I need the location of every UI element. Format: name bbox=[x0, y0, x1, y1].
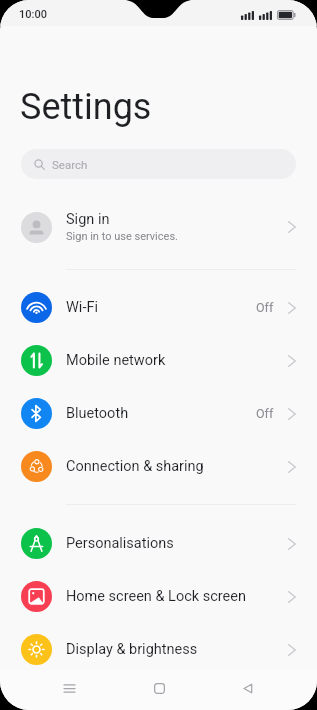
staticText: Wi-Fi bbox=[66, 299, 98, 316]
other: Open bbox=[288, 355, 296, 367]
other: Open bbox=[288, 408, 296, 420]
other: Open bbox=[288, 644, 296, 656]
other: Open bbox=[288, 221, 296, 233]
staticText: Sign in to use services. bbox=[66, 230, 178, 243]
button[interactable]: Display & brightness bbox=[0, 623, 317, 676]
staticText: 10:00 bbox=[19, 8, 47, 21]
button[interactable]: Bluetooth bbox=[0, 387, 317, 440]
other: Open bbox=[288, 302, 296, 314]
other: Open bbox=[288, 591, 296, 603]
staticText: Off bbox=[256, 300, 274, 315]
staticText: Sign in bbox=[66, 211, 110, 228]
button[interactable]: Home bbox=[138, 668, 180, 708]
staticText: Search bbox=[52, 158, 88, 171]
button[interactable]: Mobile network bbox=[0, 334, 317, 387]
button[interactable]: Home screen & Lock screen bbox=[0, 570, 317, 623]
staticText: Off bbox=[256, 406, 274, 421]
button[interactable]: Sign in bbox=[0, 201, 317, 253]
button[interactable]: Personalisations bbox=[0, 517, 317, 570]
button[interactable]: Recents bbox=[48, 668, 90, 708]
staticText: Personalisations bbox=[66, 535, 174, 552]
other: Open bbox=[288, 538, 296, 550]
staticText: Display & brightness bbox=[66, 641, 198, 658]
button[interactable]: Search bbox=[21, 149, 296, 179]
button[interactable]: Back bbox=[227, 668, 269, 708]
staticText: Home screen & Lock screen bbox=[66, 588, 246, 605]
button[interactable]: Wi-Fi bbox=[0, 281, 317, 334]
staticText: Connection & sharing bbox=[66, 458, 204, 475]
staticText: Bluetooth bbox=[66, 405, 129, 422]
staticText: Settings bbox=[20, 86, 152, 128]
button[interactable]: Connection & sharing bbox=[0, 440, 317, 493]
other: Open bbox=[288, 461, 296, 473]
staticText: Mobile network bbox=[66, 352, 166, 369]
